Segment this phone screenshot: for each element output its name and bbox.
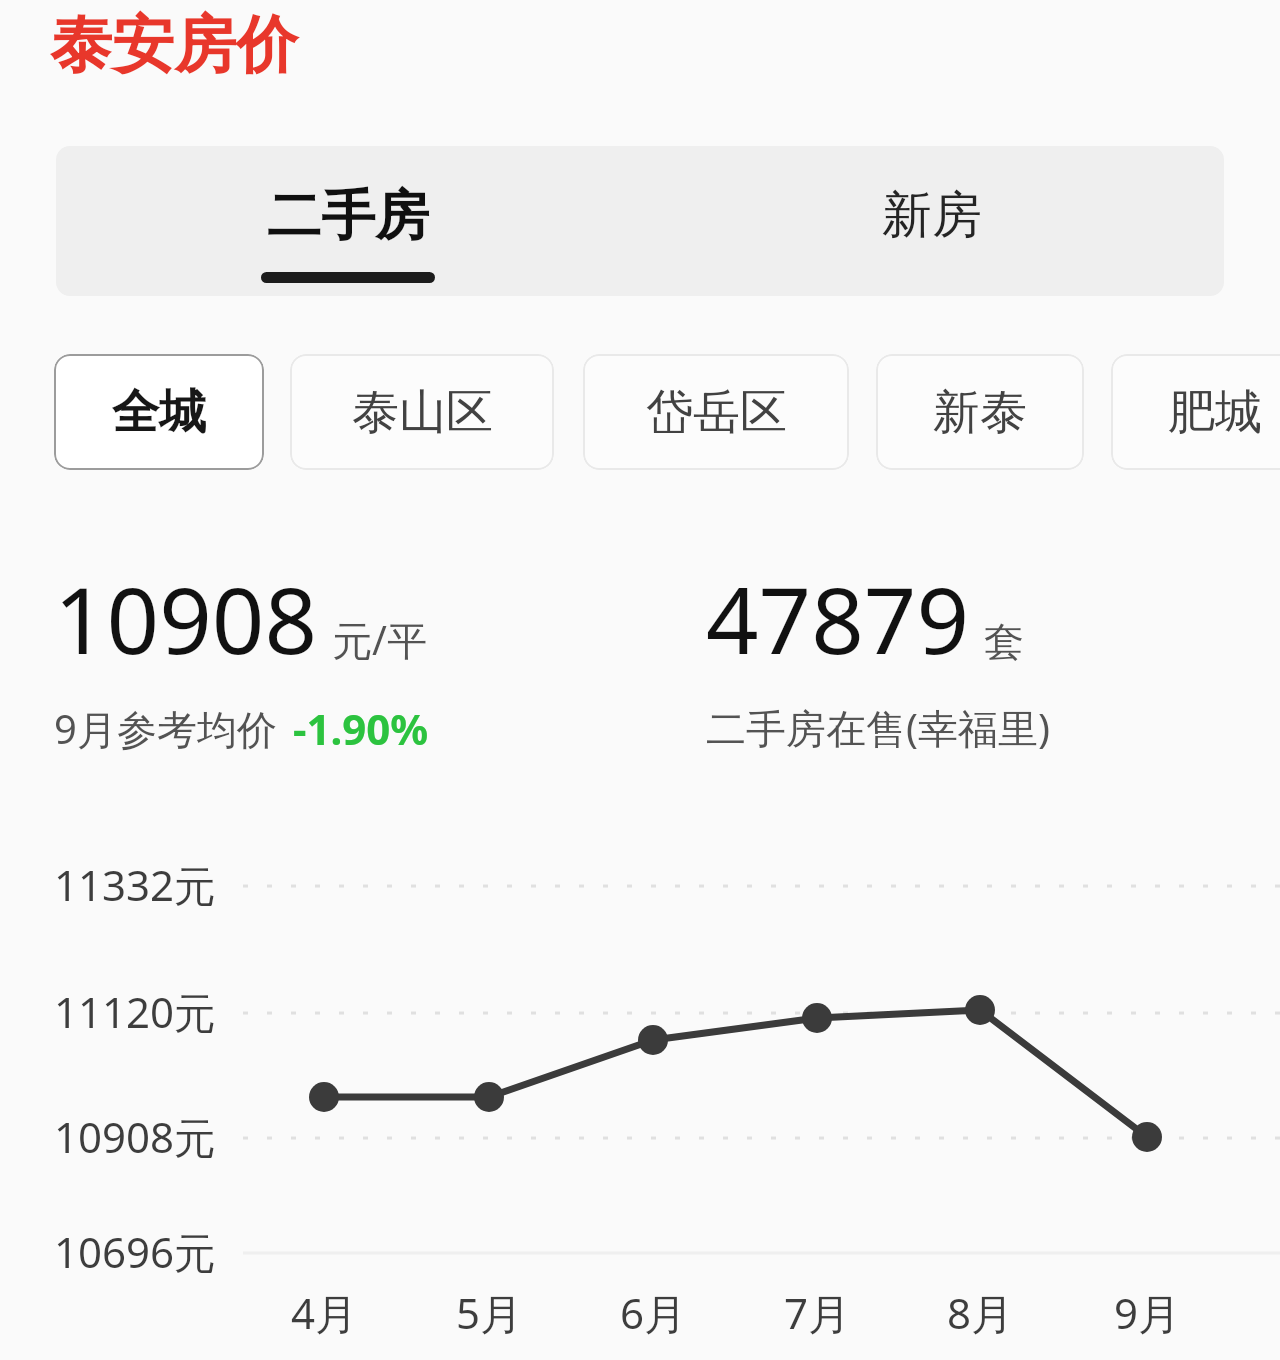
button[interactable]: 泰山区 — [290, 354, 554, 470]
staticText: 5月 — [456, 1284, 523, 1341]
staticText: 元/平 — [332, 612, 427, 667]
staticText: 6月 — [620, 1284, 687, 1341]
staticText: 二手房 — [267, 182, 429, 250]
staticText: -1.90% — [293, 700, 429, 757]
staticText: 二手房在售(幸福里) — [706, 700, 1050, 755]
button[interactable]: 肥城 — [1111, 354, 1280, 470]
staticText: 岱岳区 — [646, 383, 787, 442]
staticText: 套 — [984, 617, 1024, 667]
staticText: 9月参考均价 — [54, 701, 277, 756]
staticText: 新泰 — [933, 383, 1027, 442]
staticText: 泰安房价 — [50, 6, 298, 84]
button[interactable]: 新泰 — [876, 354, 1084, 470]
staticText: 泰山区 — [352, 383, 493, 442]
button[interactable]: 新房 — [640, 146, 1224, 296]
staticText: 10908 — [54, 556, 318, 681]
button[interactable]: 全城 — [54, 354, 264, 470]
staticText: 9月 — [1114, 1284, 1181, 1341]
staticText: 新房 — [882, 184, 982, 247]
button[interactable]: 二手房 — [56, 146, 640, 296]
staticText: 7月 — [784, 1284, 851, 1341]
staticText: 47879 — [706, 556, 970, 681]
staticText: 8月 — [947, 1284, 1014, 1341]
staticText: 肥城 — [1168, 383, 1262, 442]
staticText: 11120元 — [54, 983, 217, 1040]
staticText: 10696元 — [54, 1223, 217, 1280]
staticText: 11332元 — [54, 856, 217, 913]
button[interactable]: 岱岳区 — [583, 354, 849, 470]
staticText: 全城 — [112, 383, 206, 442]
staticText: 4月 — [291, 1284, 358, 1341]
staticText: 10908元 — [54, 1108, 217, 1165]
